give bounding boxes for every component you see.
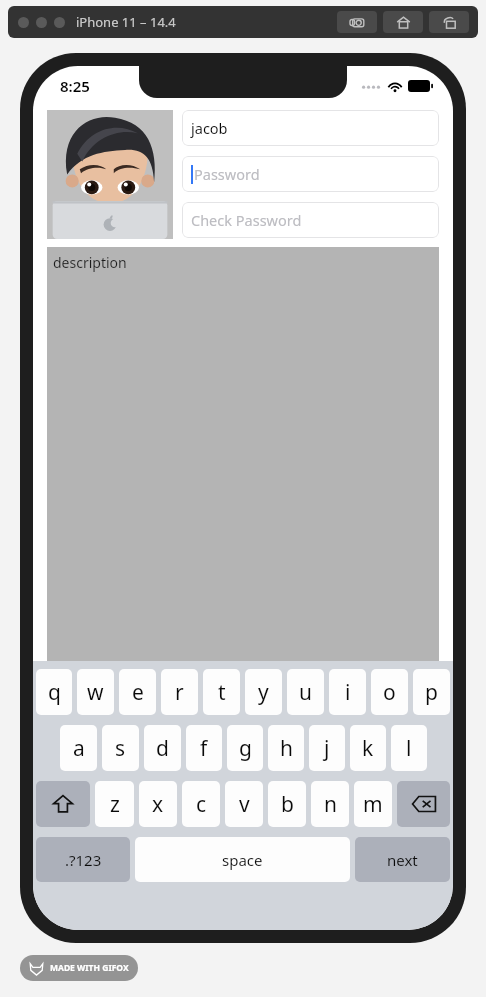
staticText: w (87, 678, 104, 707)
staticText: f (200, 734, 208, 763)
button[interactable]: t (203, 669, 240, 715)
staticText: h (280, 734, 293, 763)
staticText: jacob (191, 118, 228, 138)
button[interactable]: j (309, 725, 345, 771)
staticText: MADE WITH GIFOX (50, 962, 129, 974)
button[interactable]: Shift (36, 781, 90, 827)
staticText: q (48, 678, 61, 707)
button[interactable]: k (350, 725, 386, 771)
button[interactable]: r (161, 669, 198, 715)
staticText: t (218, 678, 226, 707)
staticText: j (324, 734, 330, 763)
staticText: y (258, 678, 269, 707)
staticText: n (324, 790, 337, 819)
button[interactable]: Profile photo (47, 110, 173, 239)
staticText: iPhone 11 – 14.4 (76, 13, 176, 31)
button[interactable]: next (355, 837, 450, 882)
button[interactable]: n (311, 781, 349, 827)
staticText: i (345, 678, 351, 707)
staticText: z (110, 790, 120, 819)
button[interactable]: z (95, 781, 134, 827)
button[interactable]: Screenshot (337, 11, 377, 33)
button[interactable]: g (227, 725, 263, 771)
staticText: k (362, 734, 374, 763)
button[interactable]: c (182, 781, 220, 827)
button[interactable]: o (371, 669, 408, 715)
staticText: r (175, 678, 184, 707)
button[interactable]: v (225, 781, 263, 827)
button[interactable]: i (329, 669, 366, 715)
button[interactable]: s (102, 725, 139, 771)
button[interactable]: Check Password (182, 202, 439, 238)
staticText: 8:25 (60, 76, 90, 96)
button[interactable]: Window button (36, 17, 47, 28)
button[interactable]: space (135, 837, 350, 882)
button[interactable]: .?123 (36, 837, 130, 882)
staticText: b (281, 790, 294, 819)
staticText: Check Password (191, 210, 302, 230)
button[interactable]: f (186, 725, 222, 771)
button[interactable]: w (77, 669, 114, 715)
staticText: m (363, 790, 383, 819)
button[interactable]: Backspace (397, 781, 450, 827)
button[interactable]: Password (182, 156, 439, 192)
button[interactable]: description (47, 247, 439, 661)
staticText: next (387, 850, 418, 870)
button[interactable]: x (139, 781, 177, 827)
staticText: .?123 (65, 850, 102, 870)
staticText: space (222, 850, 263, 870)
button[interactable]: Window button (18, 17, 29, 28)
button[interactable]: d (144, 725, 181, 771)
button[interactable]: a (60, 725, 97, 771)
button[interactable]: m (354, 781, 392, 827)
staticText: p (425, 678, 438, 707)
staticText: a (73, 734, 85, 763)
button[interactable]: Rotate (429, 11, 469, 33)
staticText: d (156, 734, 169, 763)
button[interactable]: e (119, 669, 156, 715)
staticText: u (299, 678, 312, 707)
button[interactable]: l (391, 725, 427, 771)
button[interactable]: u (287, 669, 324, 715)
staticText: description (53, 253, 127, 272)
staticText: x (152, 790, 164, 819)
staticText: o (383, 678, 396, 707)
button[interactable]: jacob (182, 110, 439, 146)
button[interactable]: Home (383, 11, 423, 33)
staticText: l (406, 734, 412, 763)
button[interactable]: b (268, 781, 306, 827)
button[interactable]: h (268, 725, 304, 771)
button[interactable]: y (245, 669, 282, 715)
staticText: c (196, 790, 207, 819)
button[interactable]: p (413, 669, 450, 715)
button[interactable]: Window button (54, 17, 65, 28)
staticText: e (132, 678, 144, 707)
staticText: v (239, 790, 250, 819)
staticText: s (115, 734, 126, 763)
staticText: Password (194, 164, 260, 184)
button[interactable]: q (36, 669, 72, 715)
staticText: g (239, 734, 252, 763)
